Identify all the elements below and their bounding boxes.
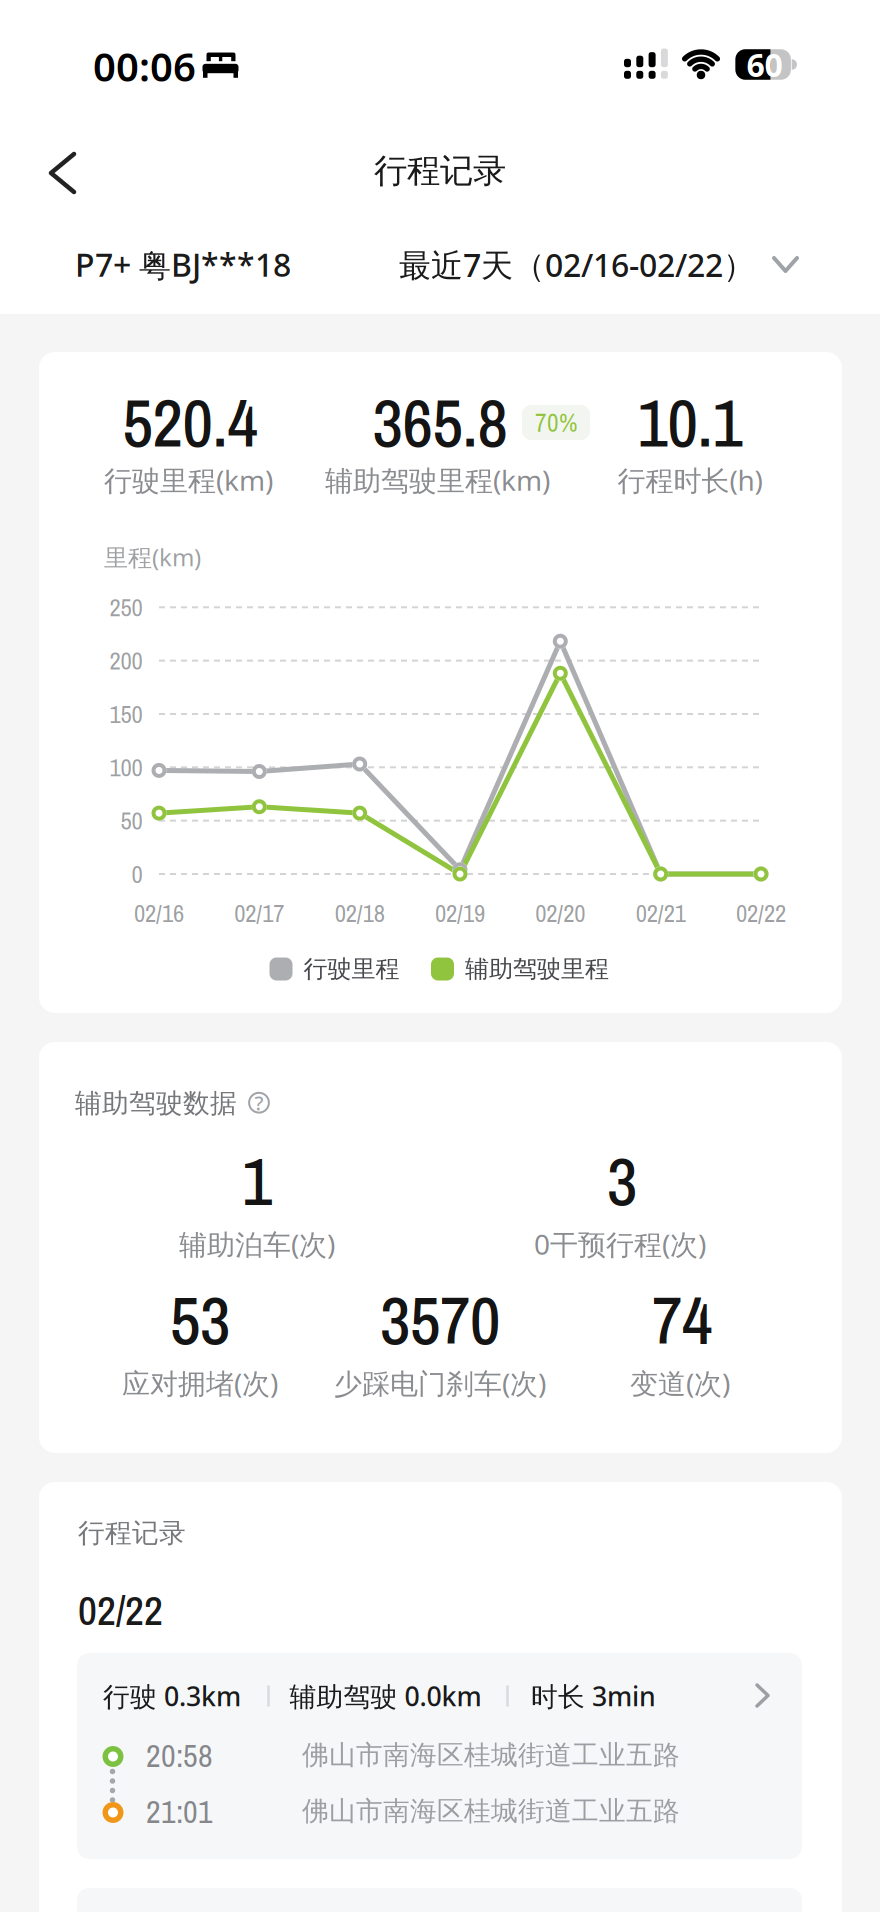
staticText: 0 <box>131 857 142 891</box>
staticText: 74 <box>652 1275 712 1365</box>
staticText: 53 <box>170 1275 230 1365</box>
button[interactable]: 辅助驾驶数据说明 <box>244 1088 274 1118</box>
staticText: 佛山市南海区桂城街道工业五路 <box>302 1795 680 1827</box>
staticText: 02/19 <box>435 896 485 930</box>
staticText: 520.4 <box>122 378 257 467</box>
staticText: 3570 <box>380 1275 500 1365</box>
staticText: 70% <box>535 405 577 439</box>
staticText: 10.1 <box>637 378 742 467</box>
staticText: 50 <box>120 804 142 837</box>
staticText: 辅助泊车(次) <box>179 1225 335 1263</box>
staticText: 里程(km) <box>104 541 201 573</box>
staticText: 行程记录 <box>374 150 506 191</box>
staticText: 365.8 <box>372 378 507 467</box>
staticText: 20:58 <box>146 1734 213 1777</box>
staticText: 辅助驾驶里程(km) <box>325 461 550 499</box>
staticText: 02/20 <box>535 896 585 930</box>
button[interactable]: 最近7天（02/16-02/22） <box>399 229 809 299</box>
staticText: 辅助驾驶数据 <box>75 1087 237 1120</box>
button[interactable]: Back <box>18 129 106 217</box>
staticText: 250 <box>109 591 142 624</box>
staticText: 行程时长(h) <box>617 461 762 499</box>
staticText: P7+ 粤BJ***18 <box>75 243 291 286</box>
staticText: 行驶 0.3km <box>103 1678 241 1714</box>
staticText: 200 <box>109 644 142 677</box>
staticText: 00:06 <box>93 39 196 92</box>
staticText: 100 <box>109 751 142 784</box>
staticText: 少踩电门刹车(次) <box>334 1364 546 1402</box>
staticText: 02/22 <box>78 1582 163 1638</box>
staticText: 行驶里程(km) <box>104 461 273 499</box>
staticText: 60 <box>746 43 782 86</box>
staticText: 0干预行程(次) <box>534 1225 706 1263</box>
staticText: 行驶里程 <box>303 954 399 984</box>
staticText: 02/16 <box>134 896 184 930</box>
button[interactable]: 行驶 0.3km <box>77 1653 802 1859</box>
staticText: 21:01 <box>146 1790 213 1833</box>
staticText: 3 <box>607 1136 637 1226</box>
staticText: ? <box>254 1089 263 1116</box>
staticText: 150 <box>109 697 142 731</box>
staticText: 02/17 <box>234 896 284 930</box>
staticText: 最近7天（02/16-02/22） <box>399 243 755 286</box>
staticText: 02/18 <box>335 896 385 930</box>
staticText: 辅助驾驶里程 <box>465 954 609 984</box>
button[interactable]: P7+ 粤BJ***18 <box>75 229 355 299</box>
staticText: 佛山市南海区桂城街道工业五路 <box>302 1739 680 1771</box>
staticText: 02/21 <box>636 896 686 930</box>
staticText: 变道(次) <box>630 1364 730 1402</box>
staticText: 时长 3min <box>531 1678 656 1714</box>
staticText: 辅助驾驶 0.0km <box>289 1678 481 1714</box>
staticText: 应对拥堵(次) <box>122 1364 278 1402</box>
staticText: 行程记录 <box>78 1517 186 1549</box>
staticText: 02/22 <box>736 896 786 930</box>
staticText: 1 <box>242 1136 272 1226</box>
